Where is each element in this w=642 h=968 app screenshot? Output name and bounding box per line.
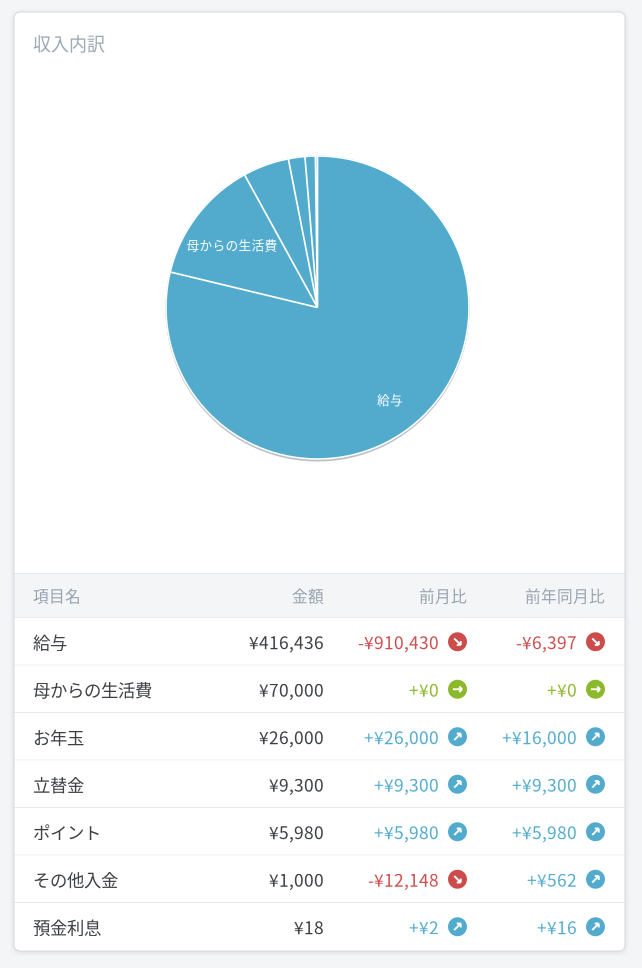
staticText: +¥9,300 — [512, 772, 577, 797]
staticText: +¥0 — [409, 677, 439, 702]
button[interactable]: お年玉 — [14, 713, 625, 760]
staticText: お年玉 — [33, 724, 84, 749]
staticText: +¥5,980 — [374, 819, 439, 844]
staticText: +¥2 — [409, 914, 439, 939]
staticText: -¥910,430 — [358, 629, 439, 654]
staticText: 立替金 — [33, 772, 84, 797]
staticText: ¥416,436 — [249, 629, 324, 654]
staticText: +¥26,000 — [364, 724, 439, 749]
staticText: +¥0 — [547, 677, 577, 702]
button[interactable]: その他入金 — [14, 855, 625, 903]
staticText: 金額 — [292, 584, 324, 607]
staticText: ¥9,300 — [269, 772, 324, 797]
staticText: その他入金 — [33, 867, 118, 892]
staticText: 項目名 — [33, 584, 81, 607]
staticText: 母からの生活費 — [33, 677, 152, 702]
staticText: 前月比 — [419, 584, 467, 607]
staticText: ポイント — [33, 819, 101, 844]
button[interactable]: 給与 — [14, 618, 625, 665]
button[interactable]: ポイント — [14, 808, 625, 855]
staticText: ¥26,000 — [259, 724, 324, 749]
staticText: 給与 — [33, 629, 67, 654]
staticText: +¥16 — [537, 914, 577, 939]
staticText: ¥5,980 — [269, 819, 324, 844]
button[interactable]: 預金利息 — [14, 903, 625, 950]
staticText: 収入内訳 — [33, 30, 105, 56]
staticText: +¥9,300 — [374, 772, 439, 797]
staticText: 母からの生活費 — [186, 235, 277, 254]
staticText: 前年同月比 — [525, 584, 605, 607]
staticText: -¥6,397 — [516, 629, 577, 654]
staticText: ¥18 — [294, 914, 324, 939]
staticText: ¥70,000 — [259, 677, 324, 702]
staticText: +¥5,980 — [512, 819, 577, 844]
staticText: -¥12,148 — [368, 867, 439, 892]
staticText: +¥16,000 — [502, 724, 577, 749]
button[interactable]: 立替金 — [14, 760, 625, 808]
staticText: 預金利息 — [33, 914, 101, 939]
button[interactable]: 母からの生活費 — [14, 665, 625, 713]
staticText: ¥1,000 — [269, 867, 324, 892]
staticText: +¥562 — [527, 867, 577, 892]
staticText: 給与 — [377, 390, 403, 408]
